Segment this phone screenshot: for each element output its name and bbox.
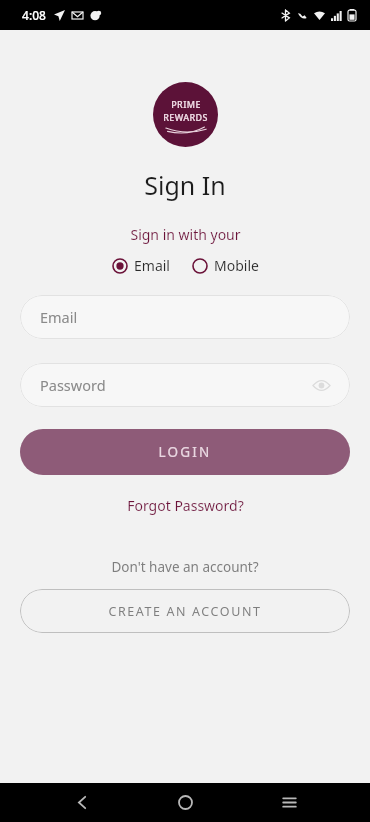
staticText: Email — [40, 307, 78, 327]
staticText: Sign In — [144, 168, 226, 202]
button[interactable]: Password — [20, 363, 350, 407]
staticText: PRIME — [171, 98, 201, 110]
button[interactable]: Mobile — [190, 254, 261, 277]
staticText: Forgot Password? — [127, 496, 244, 515]
other: Show password — [313, 377, 330, 394]
button[interactable]: Email — [110, 254, 172, 277]
button[interactable]: Back — [60, 783, 104, 822]
button[interactable]: LOGIN — [20, 429, 350, 475]
button[interactable]: CREATE AN ACCOUNT — [20, 589, 350, 633]
staticText: Don't have an account? — [111, 558, 259, 576]
staticText: CREATE AN ACCOUNT — [108, 603, 262, 620]
button[interactable]: Home — [163, 783, 207, 822]
button[interactable]: Email — [20, 295, 350, 339]
button[interactable]: Recent apps — [267, 783, 311, 822]
staticText: REWARDS — [163, 111, 208, 123]
staticText: Mobile — [214, 256, 259, 275]
staticText: LOGIN — [158, 443, 212, 461]
staticText: 4:08 — [22, 7, 46, 23]
staticText: Password — [40, 375, 106, 395]
button[interactable]: Forgot Password? — [121, 493, 250, 518]
staticText: Sign in with your — [130, 225, 241, 244]
staticText: Email — [134, 256, 170, 275]
